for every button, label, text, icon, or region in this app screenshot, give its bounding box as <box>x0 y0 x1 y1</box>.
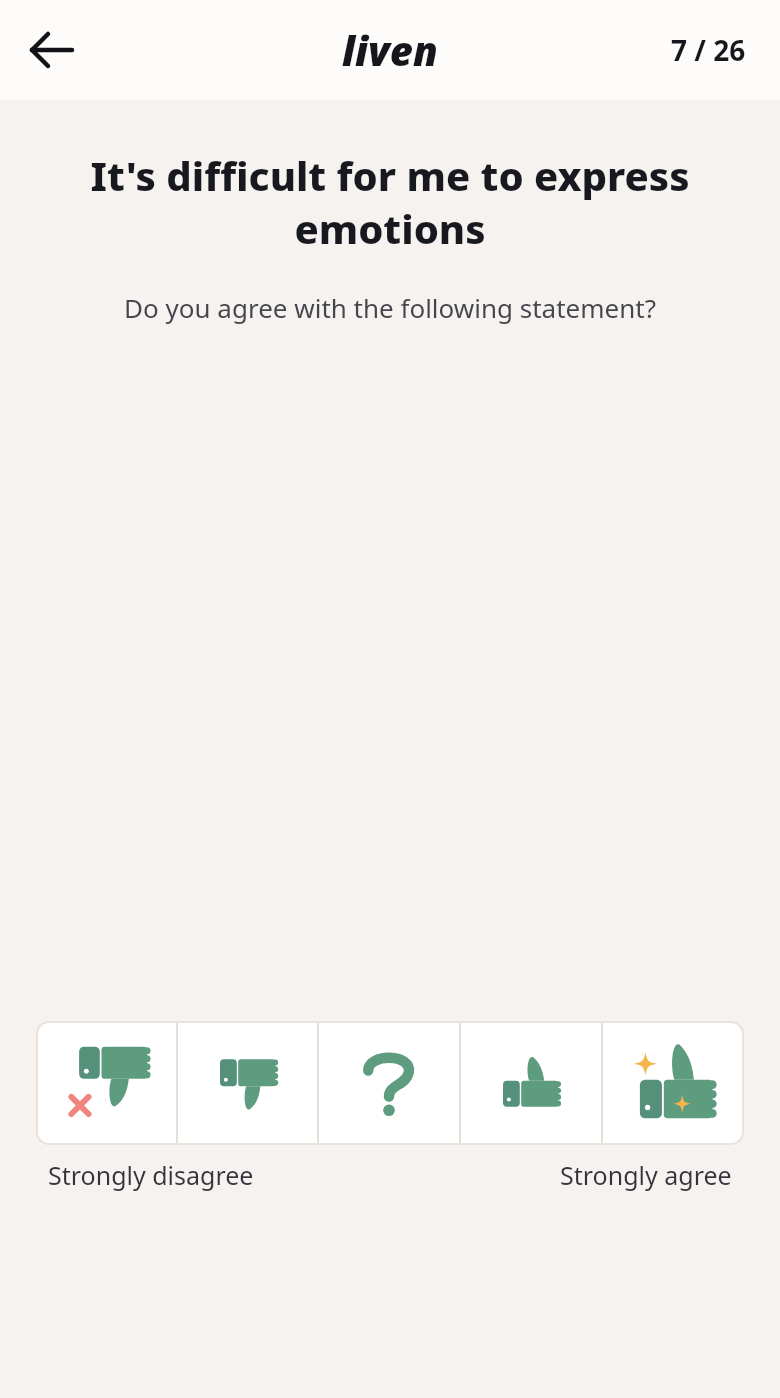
button[interactable]: Not sure <box>319 1022 459 1144</box>
staticText: 7 / 26 <box>671 31 746 69</box>
staticText: It's difficult for me to express emotion… <box>44 148 736 256</box>
button[interactable]: Disagree <box>178 1022 317 1144</box>
button[interactable]: Strongly disagree <box>37 1022 176 1144</box>
staticText: liven <box>342 23 438 77</box>
staticText: Strongly agree <box>560 1158 732 1192</box>
staticText: Do you agree with the following statemen… <box>32 290 748 325</box>
staticText: Strongly disagree <box>48 1158 254 1192</box>
button[interactable]: Back <box>14 12 90 88</box>
button[interactable]: Strongly agree <box>603 1022 743 1144</box>
button[interactable]: Agree <box>461 1022 601 1144</box>
